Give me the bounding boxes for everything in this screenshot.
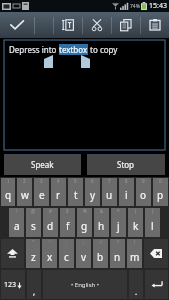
staticText: r xyxy=(56,188,61,202)
staticText: n xyxy=(114,250,121,264)
staticText: x xyxy=(47,250,53,264)
button[interactable]: ) xyxy=(145,208,160,237)
button[interactable]: Period xyxy=(129,270,143,299)
staticText: u xyxy=(106,188,113,202)
button[interactable]: # xyxy=(43,208,58,237)
button[interactable]: Symbols xyxy=(1,270,25,299)
staticText: 5 xyxy=(74,178,77,184)
button[interactable]: Paste xyxy=(141,12,169,38)
staticText: d xyxy=(47,219,54,233)
staticText: ? xyxy=(117,239,119,245)
staticText: 3 xyxy=(40,178,43,184)
button[interactable]: ! xyxy=(127,239,142,268)
button[interactable]: 4 xyxy=(51,178,66,206)
staticText: 9 xyxy=(142,178,145,184)
staticText: 8 xyxy=(125,178,128,184)
button[interactable]: 5 xyxy=(68,178,83,206)
button[interactable]: 0 xyxy=(153,178,168,206)
staticText: 74% xyxy=(130,3,140,10)
staticText: 1 xyxy=(7,178,10,184)
staticText: g xyxy=(81,219,88,233)
button[interactable]: Select text xyxy=(54,12,82,38)
button[interactable]: Done xyxy=(0,12,34,38)
staticText: t xyxy=(74,188,78,202)
button[interactable]: ( xyxy=(128,208,143,237)
staticText: q xyxy=(5,188,12,202)
button[interactable]: $ xyxy=(60,208,75,237)
staticText: c xyxy=(64,250,69,264)
button[interactable]: Stop xyxy=(87,154,165,175)
staticText: y xyxy=(90,188,96,202)
staticText: 7 xyxy=(108,178,111,184)
button[interactable]: " xyxy=(26,239,40,268)
button[interactable]: 7 xyxy=(102,178,117,206)
button[interactable]: Cut xyxy=(83,12,111,38)
staticText: $ xyxy=(66,208,69,214)
button[interactable]: Speak xyxy=(4,154,81,175)
button[interactable]: ' xyxy=(42,239,57,268)
staticText: / xyxy=(100,239,102,245)
button[interactable]: & xyxy=(94,208,109,237)
button[interactable]: Enter xyxy=(145,270,168,299)
staticText: # xyxy=(49,208,52,214)
staticText: 4 xyxy=(57,178,60,184)
button[interactable]: ; xyxy=(76,239,91,268)
button[interactable]: ? xyxy=(110,239,125,268)
button[interactable]: % xyxy=(77,208,92,237)
button[interactable]: Shift xyxy=(1,239,24,268)
staticText: h xyxy=(98,219,105,233)
staticText: & xyxy=(100,208,104,214)
button[interactable]: * xyxy=(111,208,126,237)
button[interactable]: Backspace xyxy=(144,239,168,268)
staticText: 123 xyxy=(4,280,17,290)
button[interactable]: 3 xyxy=(34,178,49,206)
button[interactable]: Space xyxy=(43,270,127,299)
button[interactable]: 2 xyxy=(17,178,32,206)
button[interactable]: 9 xyxy=(136,178,151,206)
staticText: ; xyxy=(83,239,85,245)
staticText: o xyxy=(140,188,147,202)
staticText: " xyxy=(32,239,34,245)
staticText: v xyxy=(81,250,87,264)
staticText: m xyxy=(130,250,140,264)
staticText: ! xyxy=(16,208,18,214)
staticText: w xyxy=(21,188,29,202)
staticText: 2 xyxy=(23,178,26,184)
staticText: e xyxy=(39,188,45,202)
staticText: ) xyxy=(152,208,154,214)
staticText: l xyxy=(151,219,154,233)
button[interactable]: 6 xyxy=(85,178,100,206)
staticText: f xyxy=(66,219,70,233)
staticText: 0 xyxy=(159,178,162,184)
staticText: to copy xyxy=(88,44,118,55)
button[interactable]: Depress into xyxy=(4,40,165,150)
staticText: s xyxy=(31,219,36,233)
staticText: b xyxy=(97,250,104,264)
staticText: ( xyxy=(135,208,137,214)
button[interactable]: ! xyxy=(9,208,24,237)
staticText: . xyxy=(135,286,138,297)
staticText: Speak xyxy=(31,159,54,170)
button[interactable]: @ xyxy=(26,208,41,237)
staticText: p xyxy=(157,188,164,202)
staticText: Stop xyxy=(117,159,135,170)
staticText: ! xyxy=(134,239,136,245)
staticText: % xyxy=(83,208,87,214)
button[interactable]: / xyxy=(93,239,108,268)
button[interactable]: : xyxy=(59,239,74,268)
staticText: 6 xyxy=(91,178,94,184)
staticText: • English • xyxy=(71,281,100,289)
button[interactable]: 8 xyxy=(119,178,134,206)
staticText: k xyxy=(133,219,139,233)
staticText: a xyxy=(14,219,20,233)
button[interactable]: 1 xyxy=(1,178,15,206)
button[interactable]: Copy xyxy=(112,12,140,38)
button[interactable]: Comma xyxy=(27,270,41,299)
staticText: : xyxy=(66,239,68,245)
staticText: j xyxy=(117,219,120,233)
staticText: , xyxy=(33,286,36,297)
staticText: Depress into xyxy=(9,44,59,55)
staticText: * xyxy=(117,208,120,214)
staticText: ' xyxy=(49,239,51,245)
staticText: i xyxy=(125,188,128,202)
